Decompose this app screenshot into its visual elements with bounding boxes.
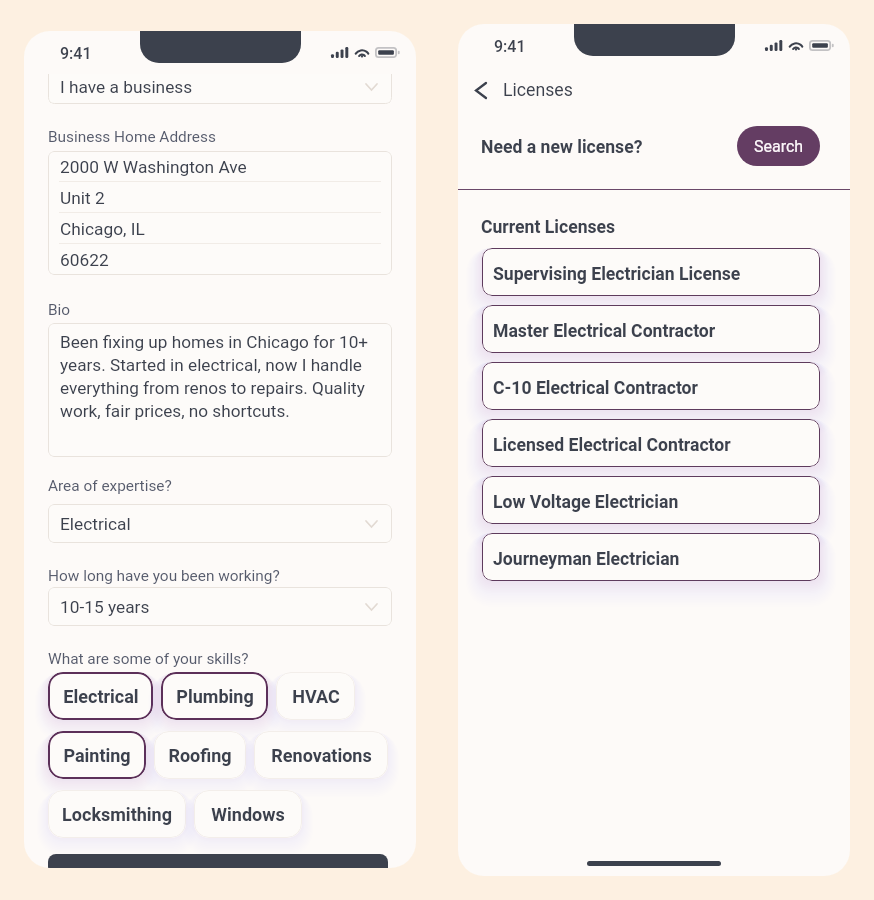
button[interactable]: Windows (194, 790, 302, 838)
staticText: 60622 (60, 250, 109, 270)
staticText: What are some of your skills? (48, 650, 249, 668)
button[interactable]: Master Electrical Contractor (482, 305, 820, 353)
staticText: Been fixing up homes in Chicago for 10+ … (60, 332, 386, 421)
staticText: Windows (211, 804, 285, 825)
button[interactable]: I have a business (48, 74, 392, 104)
button[interactable]: Supervising Electrician License (482, 248, 820, 296)
staticText: Business Home Address (48, 128, 216, 146)
button[interactable]: Locksmithing (48, 790, 186, 838)
staticText: 9:41 (60, 44, 92, 63)
staticText: Search (754, 137, 804, 156)
button[interactable]: Renovations (254, 731, 388, 779)
staticText: How long have you been working? (48, 567, 280, 585)
staticText: Licenses (503, 80, 573, 101)
staticText: Roofing (168, 745, 232, 766)
button[interactable]: 10-15 years (48, 587, 392, 626)
button[interactable]: Been fixing up homes in Chicago for 10+ … (48, 323, 392, 457)
staticText: 9:41 (494, 37, 526, 56)
staticText: 2000 W Washington Ave (60, 157, 247, 177)
button[interactable]: Back (472, 80, 490, 100)
staticText: Bio (48, 301, 71, 319)
staticText: C-10 Electrical Contractor (493, 378, 698, 399)
staticText: Painting (63, 745, 131, 766)
button[interactable]: Roofing (154, 731, 246, 779)
staticText: Current Licenses (481, 217, 616, 238)
staticText: I have a business (60, 77, 193, 97)
button[interactable]: Electrical (48, 504, 392, 543)
button[interactable]: Journeyman Electrician (482, 533, 820, 581)
button[interactable]: Painting (48, 731, 146, 779)
button[interactable]: C-10 Electrical Contractor (482, 362, 820, 410)
staticText: Low Voltage Electrician (493, 492, 679, 513)
staticText: Plumbing (176, 686, 254, 707)
staticText: Electrical (60, 514, 131, 534)
staticText: Area of expertise? (48, 477, 172, 495)
button[interactable]: Licensed Electrical Contractor (482, 419, 820, 467)
staticText: HVAC (292, 686, 340, 707)
staticText: 10-15 years (60, 597, 150, 617)
staticText: Supervising Electrician License (493, 264, 741, 285)
staticText: Renovations (271, 745, 372, 766)
button[interactable]: Electrical (48, 672, 153, 720)
staticText: Chicago, IL (60, 219, 145, 239)
staticText: Licensed Electrical Contractor (493, 435, 731, 456)
button[interactable]: Low Voltage Electrician (482, 476, 820, 524)
button[interactable]: Plumbing (161, 672, 268, 720)
staticText: Journeyman Electrician (493, 549, 680, 570)
button[interactable]: Search (737, 126, 820, 166)
button[interactable] (48, 854, 388, 868)
staticText: Need a new license? (481, 137, 643, 158)
staticText: Electrical (63, 686, 139, 707)
staticText: Unit 2 (60, 188, 105, 208)
staticText: Locksmithing (62, 804, 172, 825)
button[interactable]: HVAC (276, 672, 355, 720)
button[interactable]: 2000 W Washington Ave (48, 151, 392, 275)
staticText: Master Electrical Contractor (493, 321, 716, 342)
